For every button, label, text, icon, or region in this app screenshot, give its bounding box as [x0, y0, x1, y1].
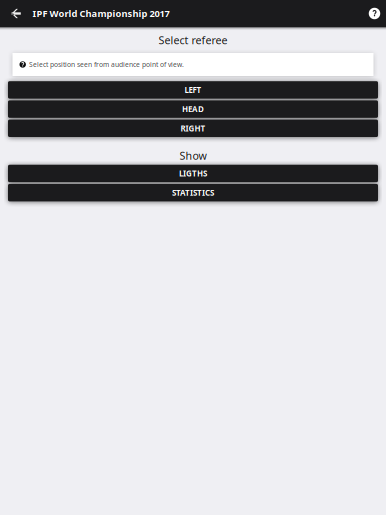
staticText: RIGHT [180, 123, 205, 134]
button[interactable]: Help [363, 0, 386, 27]
button[interactable]: LIGTHS [8, 165, 378, 182]
button[interactable]: RIGHT [8, 120, 378, 137]
staticText: HEAD [182, 104, 204, 114]
staticText: Select referee [158, 33, 227, 47]
staticText: Show [179, 149, 206, 163]
staticText: Select position seen from audience point… [29, 60, 184, 69]
staticText: LEFT [184, 85, 201, 95]
button[interactable]: LEFT [8, 81, 378, 99]
staticText: STATISTICS [172, 187, 214, 198]
staticText: IPF World Championship 2017 [32, 7, 169, 20]
button[interactable]: STATISTICS [8, 184, 378, 201]
button[interactable]: Back [0, 0, 32, 27]
button[interactable]: HEAD [8, 100, 378, 118]
staticText: LIGTHS [179, 168, 207, 179]
